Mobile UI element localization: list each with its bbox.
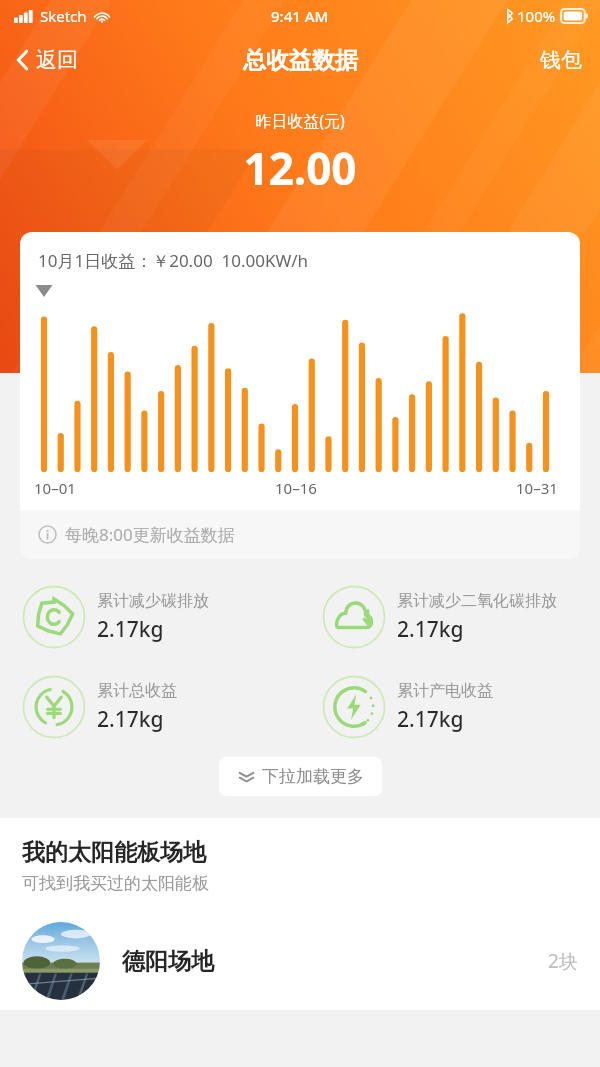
staticText: 100% (517, 6, 556, 26)
staticText: 累计减少碳排放 (97, 591, 209, 611)
staticText: 累计产电收益 (397, 681, 493, 701)
button[interactable]: 每晚8:00更新收益数据 (20, 510, 580, 559)
staticText: 下拉加载更多 (262, 766, 364, 787)
button[interactable]: 德阳场地 (0, 918, 600, 1010)
staticText: 钱包 (540, 47, 582, 73)
button[interactable]: 钱包 (522, 39, 600, 81)
staticText: 2.17kg (397, 705, 464, 734)
staticText: 10–31 (516, 478, 558, 498)
button[interactable]: 累计减少二氧化碳排放 (300, 581, 600, 653)
staticText: 我的太阳能板场地 (22, 838, 206, 867)
staticText: 累计减少二氧化碳排放 (397, 591, 557, 611)
staticText: 9:41 AM (271, 6, 329, 26)
staticText: 德阳场地 (122, 947, 214, 976)
staticText: 返回 (36, 47, 78, 73)
staticText: 10月1日收益：￥20.00 10.00KW/h (38, 249, 309, 272)
button[interactable]: 累计总收益 (0, 671, 300, 743)
staticText: 总收益数据 (243, 46, 358, 75)
staticText: 可找到我买过的太阳能板 (22, 873, 209, 894)
staticText: Sketch (40, 6, 87, 26)
button[interactable]: 下拉加载更多 (219, 757, 382, 796)
staticText: 每晚8:00更新收益数据 (65, 523, 235, 546)
staticText: 累计总收益 (97, 681, 177, 701)
staticText: 12.00 (0, 138, 600, 198)
button[interactable]: 累计减少碳排放 (0, 581, 300, 653)
button[interactable]: 10月1日收益：￥20.00 10.00KW/h (20, 232, 580, 559)
staticText: 2.17kg (97, 615, 164, 644)
staticText: 2.17kg (97, 705, 164, 734)
staticText: 昨日收益(元) (0, 110, 600, 132)
staticText: 10–16 (275, 478, 317, 498)
staticText: 2块 (548, 948, 578, 974)
staticText: 10–01 (34, 478, 76, 498)
staticText: 2.17kg (397, 615, 464, 644)
button[interactable]: 累计产电收益 (300, 671, 600, 743)
button[interactable]: 返回 (0, 39, 94, 81)
